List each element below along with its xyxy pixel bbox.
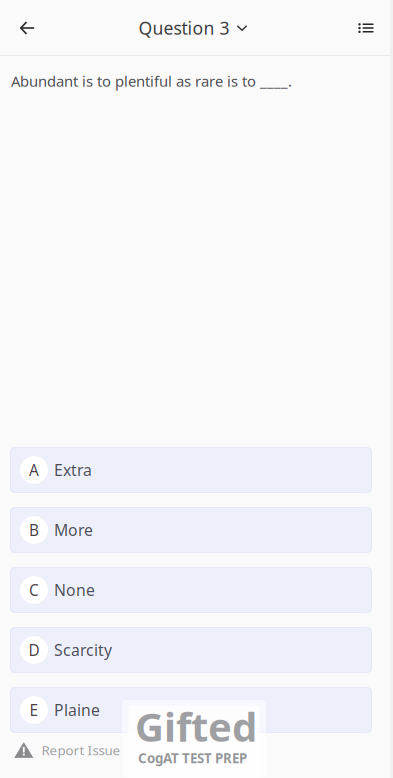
button[interactable]: D [10, 627, 372, 673]
button[interactable]: Question list [344, 6, 388, 50]
button[interactable]: A [10, 447, 372, 493]
staticText: Gifted [135, 699, 257, 753]
staticText: B [29, 520, 39, 540]
staticText: D [28, 640, 39, 660]
staticText: Extra [54, 459, 92, 481]
button[interactable]: Report Issue [0, 733, 393, 767]
staticText: None [54, 579, 95, 601]
staticText: Plaine [54, 699, 100, 721]
button[interactable]: C [10, 567, 372, 613]
staticText: More [54, 519, 93, 541]
staticText: E [29, 700, 38, 720]
staticText: Question 3 [138, 16, 229, 40]
staticText: Scarcity [54, 639, 112, 661]
button[interactable]: B [10, 507, 372, 553]
staticText: Report Issue [42, 741, 121, 759]
staticText: C [29, 580, 39, 600]
button[interactable]: E [10, 687, 372, 733]
staticText: Abundant is to plentiful as rare is to _… [11, 71, 292, 91]
staticText: CogAT TEST PREP [138, 749, 247, 767]
button[interactable]: Back [5, 6, 49, 50]
button[interactable]: Question 3 [138, 6, 247, 50]
staticText: A [29, 460, 39, 480]
